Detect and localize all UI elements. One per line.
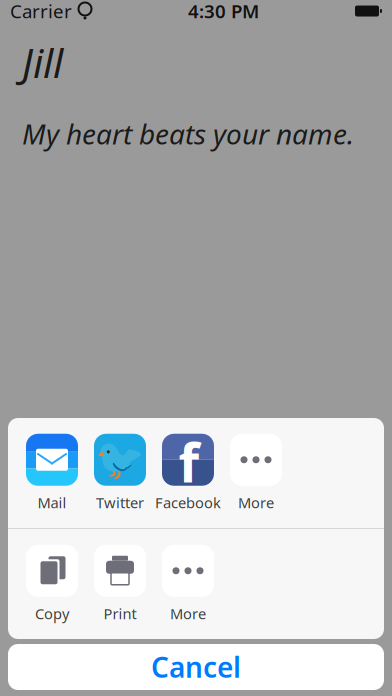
staticText: More	[170, 604, 206, 623]
staticText: f	[178, 426, 199, 497]
button[interactable]: ✉	[18, 428, 86, 518]
button[interactable]: More	[222, 428, 290, 518]
button[interactable]: Cancel	[8, 644, 384, 690]
staticText: Copy	[35, 604, 69, 623]
staticText: My heart beats your name.	[22, 115, 354, 152]
staticText: More	[238, 493, 274, 512]
staticText: Facebook	[155, 493, 221, 512]
staticText: Carrier	[10, 0, 72, 23]
button[interactable]: 🐦	[86, 428, 154, 518]
button[interactable]: Print	[86, 539, 154, 629]
button[interactable]: f	[154, 428, 222, 518]
staticText: 4:30 PM	[188, 0, 259, 23]
staticText: Jill	[22, 36, 63, 89]
button[interactable]: Copy	[18, 539, 86, 629]
staticText: Mail	[37, 493, 66, 512]
staticText: Cancel	[151, 648, 241, 686]
staticText: 🐦	[95, 437, 145, 483]
staticText: Print	[103, 604, 136, 623]
button[interactable]: More	[154, 539, 222, 629]
staticText: Twitter	[96, 493, 144, 512]
